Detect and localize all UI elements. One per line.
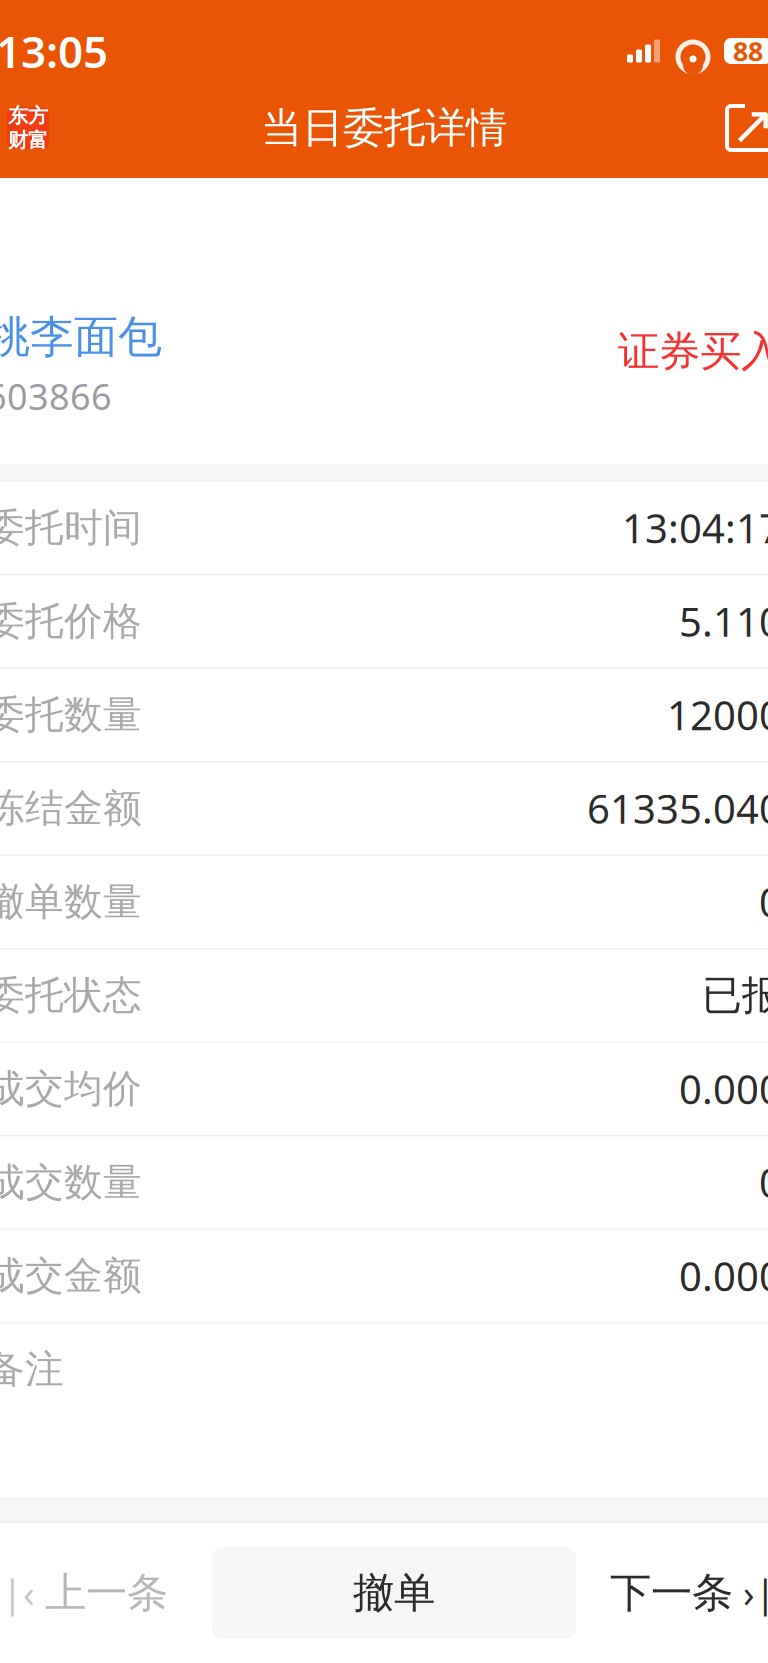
staticText: 0	[759, 875, 768, 928]
staticText: 13:04:17	[622, 501, 768, 554]
button[interactable]: 撤单	[212, 1547, 576, 1639]
staticText: ›|	[743, 1568, 768, 1618]
button[interactable]: 下一条	[584, 1547, 768, 1639]
staticText: 成交均价	[0, 1065, 142, 1113]
staticText: 委托时间	[0, 504, 142, 552]
button[interactable]: 返回	[0, 81, 49, 175]
staticText: 88	[733, 33, 763, 69]
staticText: 财富	[8, 128, 48, 153]
staticText: 5.110	[679, 595, 768, 648]
staticText: 委托状态	[0, 972, 142, 1019]
staticText: 0.000	[679, 1062, 768, 1115]
staticText: 成交数量	[0, 1159, 142, 1206]
staticText: 下一条	[610, 1568, 733, 1618]
button[interactable]: 分享	[714, 93, 768, 163]
staticText: 备注	[0, 1346, 64, 1393]
staticText: 0.000	[679, 1249, 768, 1302]
staticText: 撤单数量	[0, 878, 142, 926]
staticText: 0	[759, 1156, 768, 1209]
staticText: 撤单	[353, 1568, 435, 1618]
staticText: ↗	[730, 95, 768, 155]
button[interactable]: |‹	[0, 1547, 204, 1639]
staticText: 冻结金额	[0, 785, 142, 832]
staticText: 上一条	[45, 1568, 168, 1618]
staticText: 当日委托详情	[261, 103, 507, 153]
staticText: 603866	[0, 372, 112, 420]
staticText: 12000	[667, 688, 768, 741]
staticText: 已报	[702, 971, 768, 1020]
staticText: 东方	[8, 103, 48, 128]
staticText: 桃李面包	[0, 310, 162, 364]
staticText: 13:05	[0, 22, 108, 80]
staticText: 委托价格	[0, 598, 142, 645]
staticText: 61335.040	[587, 782, 768, 835]
staticText: |‹	[2, 1568, 35, 1618]
staticText: 成交金额	[0, 1252, 142, 1300]
staticText: 委托数量	[0, 691, 142, 739]
staticText: 证券买入	[618, 326, 768, 377]
